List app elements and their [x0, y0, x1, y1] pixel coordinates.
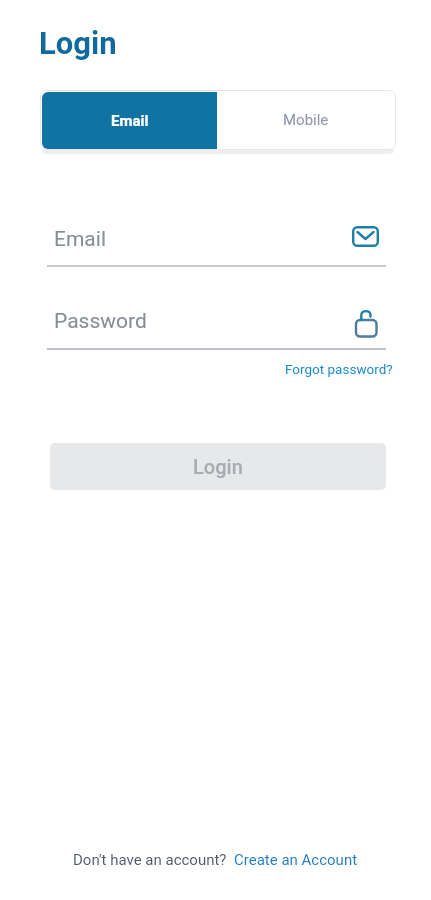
- staticText: Email: [111, 112, 149, 130]
- button[interactable]: Create an Account: [234, 851, 358, 869]
- staticText: Email: [54, 227, 106, 252]
- staticText: Mobile: [283, 111, 329, 129]
- button[interactable]: Login: [50, 443, 386, 490]
- staticText: Don't have an account?: [73, 851, 234, 869]
- button[interactable]: Email: [42, 92, 217, 149]
- staticText: Login: [39, 25, 117, 61]
- staticText: Login: [193, 455, 243, 478]
- button[interactable]: Forgot password?: [285, 361, 393, 377]
- staticText: Password: [54, 309, 147, 334]
- button[interactable]: Mobile: [216, 90, 396, 150]
